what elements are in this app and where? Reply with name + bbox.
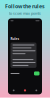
button[interactable] — [34, 71, 39, 75]
button[interactable]: Home — [8, 89, 19, 91]
staticText: Rules — [10, 37, 19, 41]
staticText: Follow the rules — [5, 3, 45, 10]
button[interactable]: Profile — [31, 89, 42, 91]
staticText: to score max points — [9, 11, 41, 16]
button[interactable]: Play — [19, 89, 31, 91]
